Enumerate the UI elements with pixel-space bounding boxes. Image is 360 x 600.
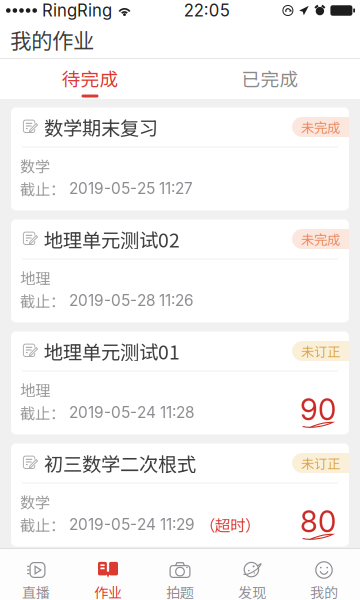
- button[interactable]: 已完成: [180, 59, 360, 99]
- staticText: （超时）: [200, 513, 260, 536]
- staticText: 2019-05-25 11:27: [69, 179, 193, 198]
- button[interactable]: 作业: [72, 549, 144, 600]
- button[interactable]: 未完成: [11, 219, 349, 322]
- button[interactable]: 发现: [216, 549, 288, 600]
- staticText: 未订正: [301, 341, 340, 361]
- staticText: 截止：: [20, 289, 65, 312]
- button[interactable]: 拍题: [144, 549, 216, 600]
- staticText: 数学期末复习: [44, 113, 158, 141]
- button[interactable]: 直播: [0, 549, 72, 600]
- staticText: 我的: [310, 582, 338, 600]
- staticText: 截止：: [20, 177, 65, 200]
- staticText: 未订正: [301, 453, 340, 473]
- staticText: RingRing: [42, 0, 112, 21]
- staticText: 90: [300, 392, 336, 427]
- staticText: 已完成: [241, 64, 298, 91]
- staticText: 22:05: [184, 0, 230, 21]
- staticText: 拍题: [166, 582, 194, 600]
- staticText: 直播: [22, 582, 50, 600]
- button[interactable]: 未完成: [11, 107, 349, 210]
- button[interactable]: 我的: [288, 549, 360, 600]
- staticText: 发现: [238, 582, 266, 600]
- staticText: 80: [300, 504, 336, 539]
- staticText: 未完成: [301, 117, 340, 137]
- staticText: 地理单元测试02: [44, 225, 180, 253]
- button[interactable]: 待完成: [0, 59, 180, 99]
- staticText: 2019-05-24 11:28: [69, 403, 194, 422]
- staticText: 我的作业: [10, 24, 94, 55]
- staticText: 数学: [20, 154, 50, 177]
- button[interactable]: 未订正: [11, 443, 349, 546]
- staticText: 作业: [94, 582, 122, 600]
- staticText: 数学: [20, 490, 50, 513]
- button[interactable]: 未订正: [11, 331, 349, 434]
- staticText: 待完成: [61, 64, 118, 91]
- staticText: 初三数学二次根式: [44, 449, 196, 477]
- staticText: 地理: [20, 378, 50, 401]
- staticText: 地理单元测试01: [44, 337, 180, 365]
- staticText: 截止：: [20, 513, 65, 536]
- staticText: 未完成: [301, 229, 340, 249]
- staticText: 截止：: [20, 401, 65, 424]
- staticText: 2019-05-24 11:29: [69, 515, 195, 534]
- staticText: 地理: [20, 266, 50, 289]
- staticText: 2019-05-28 11:26: [69, 291, 194, 310]
